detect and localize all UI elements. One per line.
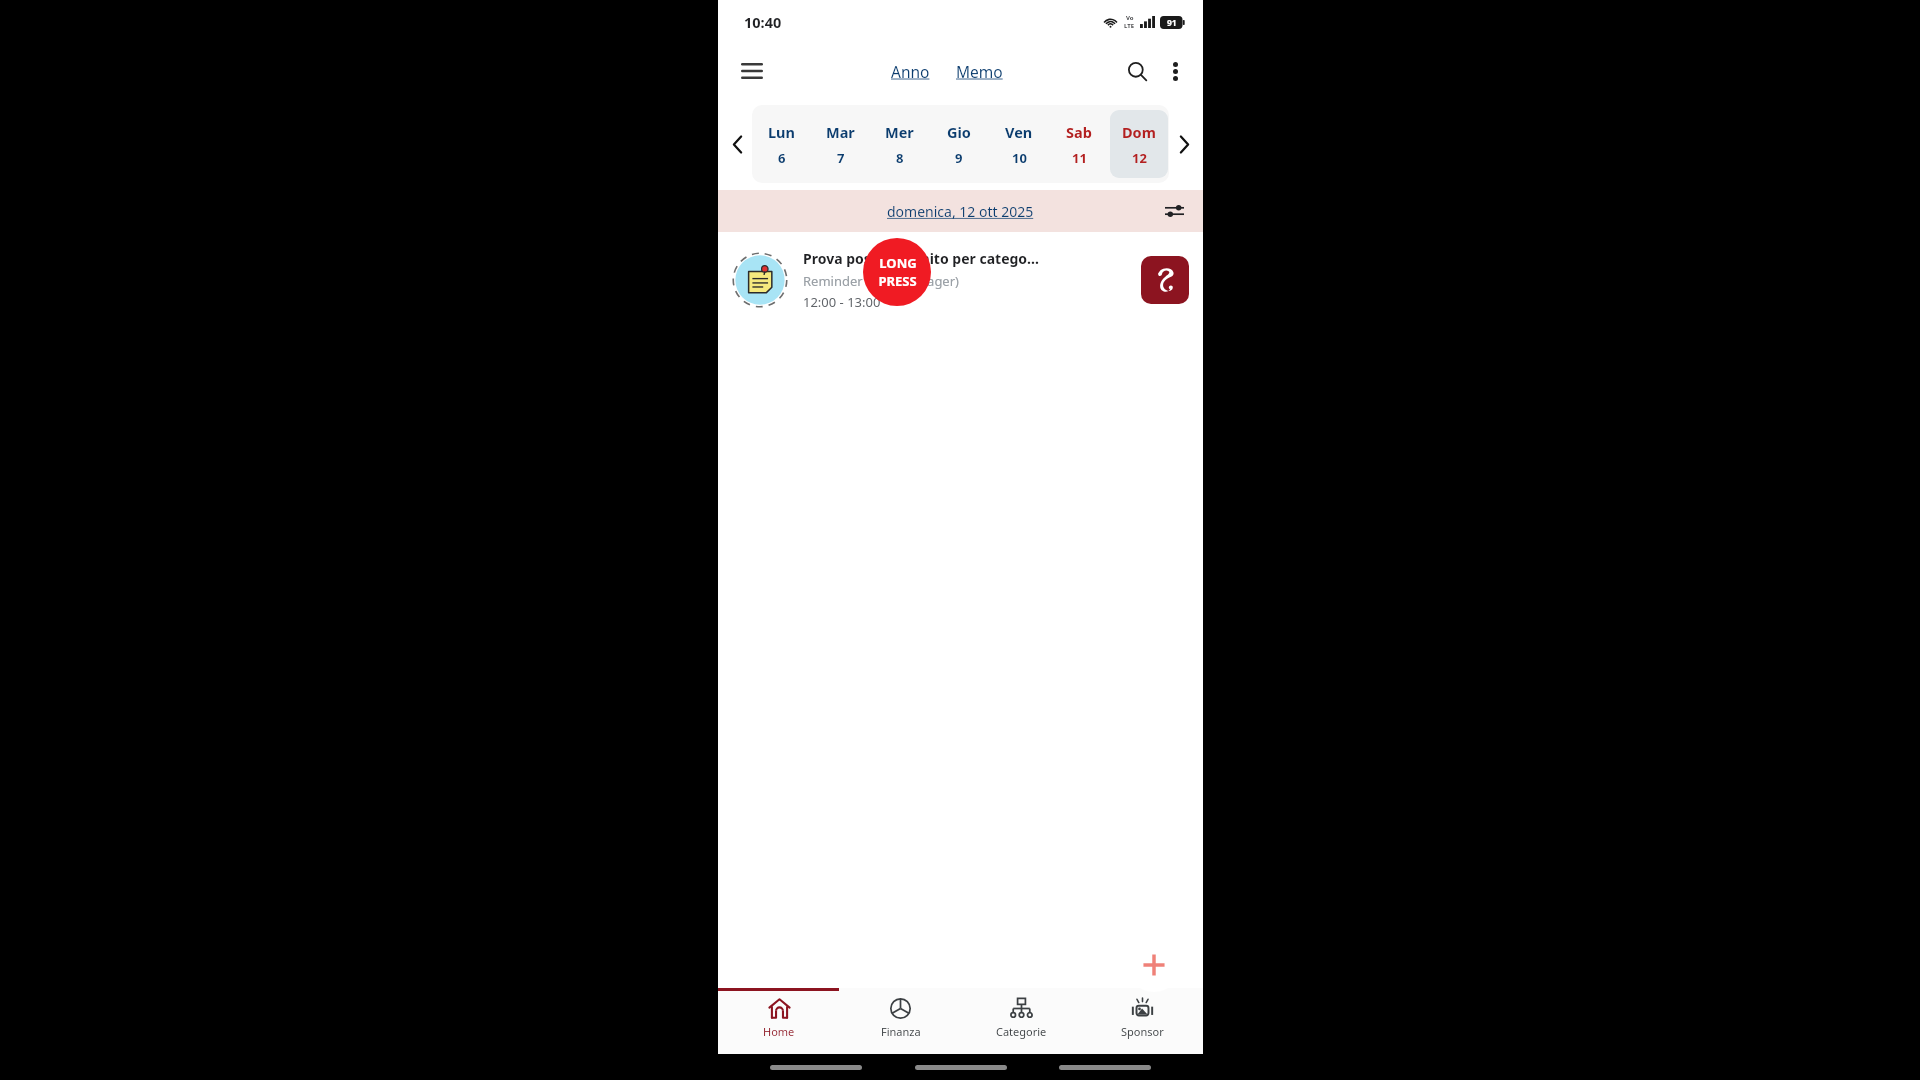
button[interactable]: Mar: [812, 110, 869, 178]
staticText: Lun: [768, 122, 795, 142]
staticText: domenica, 12 ott 2025: [887, 202, 1034, 221]
button[interactable]: Add: [1127, 938, 1181, 992]
staticText: 12:00 - 13:00: [803, 293, 881, 311]
button[interactable]: LONG: [863, 238, 931, 306]
button[interactable]: Sab: [1050, 110, 1108, 178]
button[interactable]: Categorie: [961, 988, 1082, 1054]
staticText: Sab: [1066, 122, 1092, 142]
staticText: Ven: [1005, 122, 1033, 142]
staticText: LTE: [1124, 22, 1135, 30]
staticText: LONG: [879, 254, 917, 272]
button[interactable]: Next week: [1169, 129, 1199, 159]
staticText: 7: [837, 149, 845, 167]
staticText: Categorie: [996, 1024, 1047, 1039]
button[interactable]: Previous week: [722, 129, 752, 159]
staticText: 6: [778, 149, 786, 167]
button[interactable]: Gio: [930, 110, 988, 178]
staticText: Mar: [826, 122, 855, 142]
button[interactable]: Prova post indefinito per catego…: [718, 232, 1203, 328]
button[interactable]: Sponsor: [1082, 988, 1203, 1054]
staticText: Anno: [891, 61, 930, 82]
staticText: 8: [896, 149, 904, 167]
staticText: Sponsor: [1121, 1024, 1164, 1039]
staticText: 11: [1072, 149, 1087, 167]
button[interactable]: More options: [1157, 53, 1193, 89]
button[interactable]: Search: [1117, 51, 1157, 91]
staticText: 10: [1012, 149, 1027, 167]
staticText: 9: [955, 149, 963, 167]
button[interactable]: Anno: [887, 55, 934, 88]
button[interactable]: Finanza: [840, 988, 961, 1054]
button[interactable]: Lun: [753, 110, 810, 178]
staticText: 12: [1132, 149, 1147, 167]
staticText: Home: [763, 1024, 795, 1039]
staticText: Dom: [1122, 122, 1156, 142]
staticText: PRESS: [878, 272, 917, 290]
staticText: Memo: [956, 61, 1003, 82]
button[interactable]: domenica, 12 ott 2025: [883, 198, 1038, 225]
staticText: Prova post indefinito per catego…: [803, 249, 1040, 268]
button[interactable]: Home: [718, 988, 840, 1054]
staticText: Mer: [885, 122, 914, 142]
staticText: Gio: [947, 122, 971, 142]
staticText: 91: [1167, 17, 1177, 29]
button[interactable]: Dom: [1110, 110, 1168, 178]
button[interactable]: Memo: [952, 55, 1007, 88]
staticText: Vo: [1126, 14, 1134, 22]
staticText: 10:40: [744, 12, 782, 32]
button[interactable]: Ven: [990, 110, 1048, 178]
button[interactable]: Menu: [732, 51, 772, 91]
button[interactable]: Filter: [1157, 194, 1191, 228]
button[interactable]: Mer: [871, 110, 928, 178]
staticText: Reminder (Task Manager): [803, 272, 959, 290]
staticText: Finanza: [881, 1024, 921, 1039]
button[interactable]: Sponsor: [1141, 256, 1189, 304]
